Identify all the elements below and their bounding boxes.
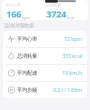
staticText: 平均配速	[17, 70, 37, 76]
staticText: 331 kcal	[62, 52, 82, 60]
staticText: kcal	[67, 15, 74, 20]
staticText: 总消耗量	[45, 3, 61, 8]
staticText: 平均步频	[17, 87, 37, 93]
staticText: 3724	[46, 8, 66, 20]
staticText: 平均心率	[17, 36, 37, 42]
staticText: 19 km/h	[62, 69, 82, 77]
button[interactable]: 平均配速	[3, 65, 87, 81]
staticText: 总消耗量	[17, 53, 37, 59]
staticText: 0.2 t / 1.66m	[53, 86, 82, 94]
staticText: 运动详细数据	[4, 22, 34, 29]
staticText: 平均心率	[5, 3, 21, 8]
staticText: bpm	[22, 15, 30, 20]
button[interactable]: 平均心率	[3, 31, 87, 47]
button[interactable]: 平均步频	[3, 82, 87, 98]
button[interactable]: 总消耗量	[3, 48, 87, 64]
staticText: 72 bpm	[64, 35, 82, 43]
staticText: 166	[6, 8, 21, 20]
